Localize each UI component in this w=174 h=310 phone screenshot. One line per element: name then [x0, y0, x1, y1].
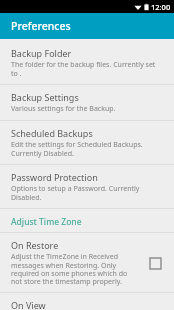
staticText: On Restore [11, 239, 59, 251]
staticText: Scheduled Backups [11, 127, 93, 139]
staticText: 12:00 [151, 2, 171, 12]
staticText: Adjust the TimeZone in Received messages… [11, 252, 138, 286]
staticText: Edit the settings for Scheduled Backups.… [11, 140, 163, 158]
button[interactable]: Password Protection [0, 165, 174, 208]
staticText: Backup Folder [11, 47, 72, 59]
staticText: Backup Settings [11, 91, 79, 103]
button[interactable]: Scheduled Backups [0, 121, 174, 164]
staticText: Preferences [11, 19, 71, 33]
staticText: The folder for the backup files. Current… [11, 60, 163, 78]
button[interactable]: Backup Folder [0, 41, 174, 84]
staticText: Adjust Time Zone [11, 216, 82, 228]
button[interactable]: On Restore checkbox [144, 252, 166, 274]
staticText: Various settings for the Backup. [11, 104, 116, 114]
staticText: On View [11, 299, 46, 310]
button[interactable]: On Restore [0, 233, 174, 292]
staticText: Password Protection [11, 171, 98, 183]
button[interactable]: Backup Settings [0, 85, 174, 120]
button[interactable]: On View [0, 293, 174, 310]
staticText: Options to setup a Password. Currently D… [11, 184, 163, 202]
button[interactable]: Preferences [0, 13, 174, 39]
